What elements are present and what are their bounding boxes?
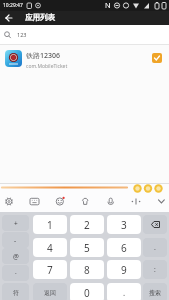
button[interactable]: 0 — [70, 283, 104, 300]
staticText: 搜索 — [149, 289, 161, 297]
button[interactable] — [145, 183, 169, 212]
button[interactable]: 4 — [33, 238, 67, 257]
button[interactable]: @ — [2, 248, 29, 264]
staticText: 8 — [84, 263, 90, 277]
staticText: 符 — [13, 289, 19, 297]
button[interactable]: 2 — [70, 215, 104, 234]
button[interactable] — [97, 183, 121, 212]
button[interactable]: 6 — [107, 238, 141, 257]
button[interactable] — [49, 183, 73, 212]
button[interactable]: 9 — [107, 260, 141, 279]
staticText: · — [15, 269, 17, 278]
button[interactable] — [0, 183, 25, 212]
staticText: 10:29:47 — [3, 2, 23, 9]
staticText: . — [154, 243, 156, 253]
button[interactable]: 5 — [70, 238, 104, 257]
staticText: 9 — [121, 263, 127, 277]
staticText: 返回 — [44, 289, 56, 297]
staticText: 1 — [47, 218, 53, 232]
staticText: 4 — [47, 241, 53, 255]
staticText: + — [14, 219, 18, 228]
staticText: 123 — [17, 31, 27, 38]
button[interactable] — [143, 215, 167, 234]
button[interactable] — [152, 53, 162, 63]
staticText: 5 — [84, 241, 90, 255]
staticText: @ — [13, 252, 19, 261]
staticText: 0 — [84, 286, 90, 300]
button[interactable] — [121, 183, 145, 212]
button[interactable]: 7 — [33, 260, 67, 279]
button[interactable]: 8 — [70, 260, 104, 279]
button[interactable]: 铁路12306 — [0, 45, 169, 72]
staticText: 3 — [121, 218, 127, 232]
button[interactable]: 1 — [33, 215, 67, 234]
button[interactable]: : — [143, 260, 167, 279]
staticText: 铁路12306 — [26, 51, 61, 61]
staticText: 应用列表 — [25, 13, 55, 22]
button[interactable]: . — [107, 283, 141, 300]
button[interactable] — [73, 183, 97, 212]
button[interactable] — [0, 11, 14, 25]
staticText: . — [123, 287, 126, 298]
button[interactable]: - — [2, 232, 29, 248]
staticText: 7 — [47, 263, 53, 277]
staticText: 2 — [84, 218, 90, 232]
button[interactable]: 返回 — [33, 283, 67, 300]
button[interactable]: 搜索 — [143, 283, 167, 300]
staticText: com.MobileTicket — [26, 63, 68, 70]
button[interactable]: 3 — [107, 215, 141, 234]
button[interactable]: 符 — [2, 283, 29, 300]
button[interactable]: 123 — [0, 25, 169, 45]
staticText: - — [14, 236, 17, 245]
button[interactable] — [25, 183, 49, 212]
staticText: : — [154, 265, 156, 274]
button[interactable]: + — [2, 215, 29, 231]
staticText: 6 — [121, 241, 127, 255]
